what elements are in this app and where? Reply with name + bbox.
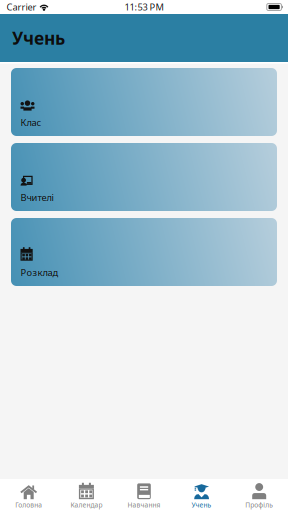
staticText: Учень (12, 26, 65, 49)
button[interactable]: Головна (0, 479, 58, 512)
button[interactable]: Клас (11, 68, 277, 136)
button[interactable]: Профіль (230, 479, 288, 512)
button[interactable]: Розклад (11, 218, 277, 286)
staticText: Розклад (20, 266, 58, 278)
staticText: Профіль (245, 500, 273, 509)
staticText: Carrier (6, 1, 36, 13)
staticText: Головна (15, 500, 42, 509)
staticText: Учень (192, 500, 212, 509)
button[interactable]: Вчителі (11, 143, 277, 211)
staticText: Клас (20, 116, 41, 128)
button[interactable]: Календар (58, 479, 115, 512)
button[interactable]: Навчання (115, 479, 173, 512)
staticText: Календар (70, 500, 102, 509)
staticText: Вчителі (20, 191, 53, 203)
staticText: Навчання (127, 500, 160, 509)
staticText: 11:53 PM (124, 1, 163, 13)
button[interactable]: Учень (173, 479, 230, 512)
